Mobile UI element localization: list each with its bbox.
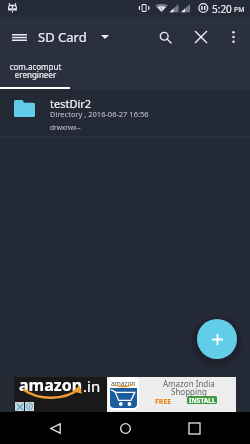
staticText: amazon [111, 379, 136, 388]
button[interactable]: amazon [14, 377, 236, 412]
staticText: .in [83, 376, 101, 396]
staticText: drwxrwx-- [50, 123, 81, 132]
button[interactable]: Close ad [15, 402, 24, 411]
button[interactable]: Ad information [25, 402, 34, 411]
button[interactable]: Recent apps [172, 412, 217, 444]
button[interactable]: Select storage [93, 25, 117, 49]
staticText: testDir2 [50, 96, 92, 111]
staticText: SD Card [38, 28, 87, 46]
button[interactable]: INSTALL [187, 396, 217, 404]
staticText: FREE [155, 397, 172, 407]
button[interactable]: Back [33, 412, 78, 444]
staticText: Amazon India [163, 378, 215, 389]
button[interactable]: Search [147, 17, 184, 57]
staticText: Shopping [171, 386, 207, 397]
staticText: INSTALL [189, 396, 216, 404]
button[interactable]: testDir2 [0, 89, 250, 136]
button[interactable]: Navigation drawer [0, 17, 38, 57]
staticText: com.acomputerengineer [9, 61, 62, 80]
staticText: 5:20 [212, 2, 232, 16]
button[interactable]: Add [197, 319, 237, 359]
button[interactable]: com.acomputerengineer [0, 57, 70, 89]
button[interactable]: More options [217, 17, 250, 57]
button[interactable]: Close [184, 17, 217, 57]
staticText: Directory , 2016-06-27 16:56 [50, 109, 149, 119]
staticText: amazon [19, 374, 83, 396]
staticText: PM [234, 5, 245, 15]
button[interactable]: Home [103, 412, 148, 444]
